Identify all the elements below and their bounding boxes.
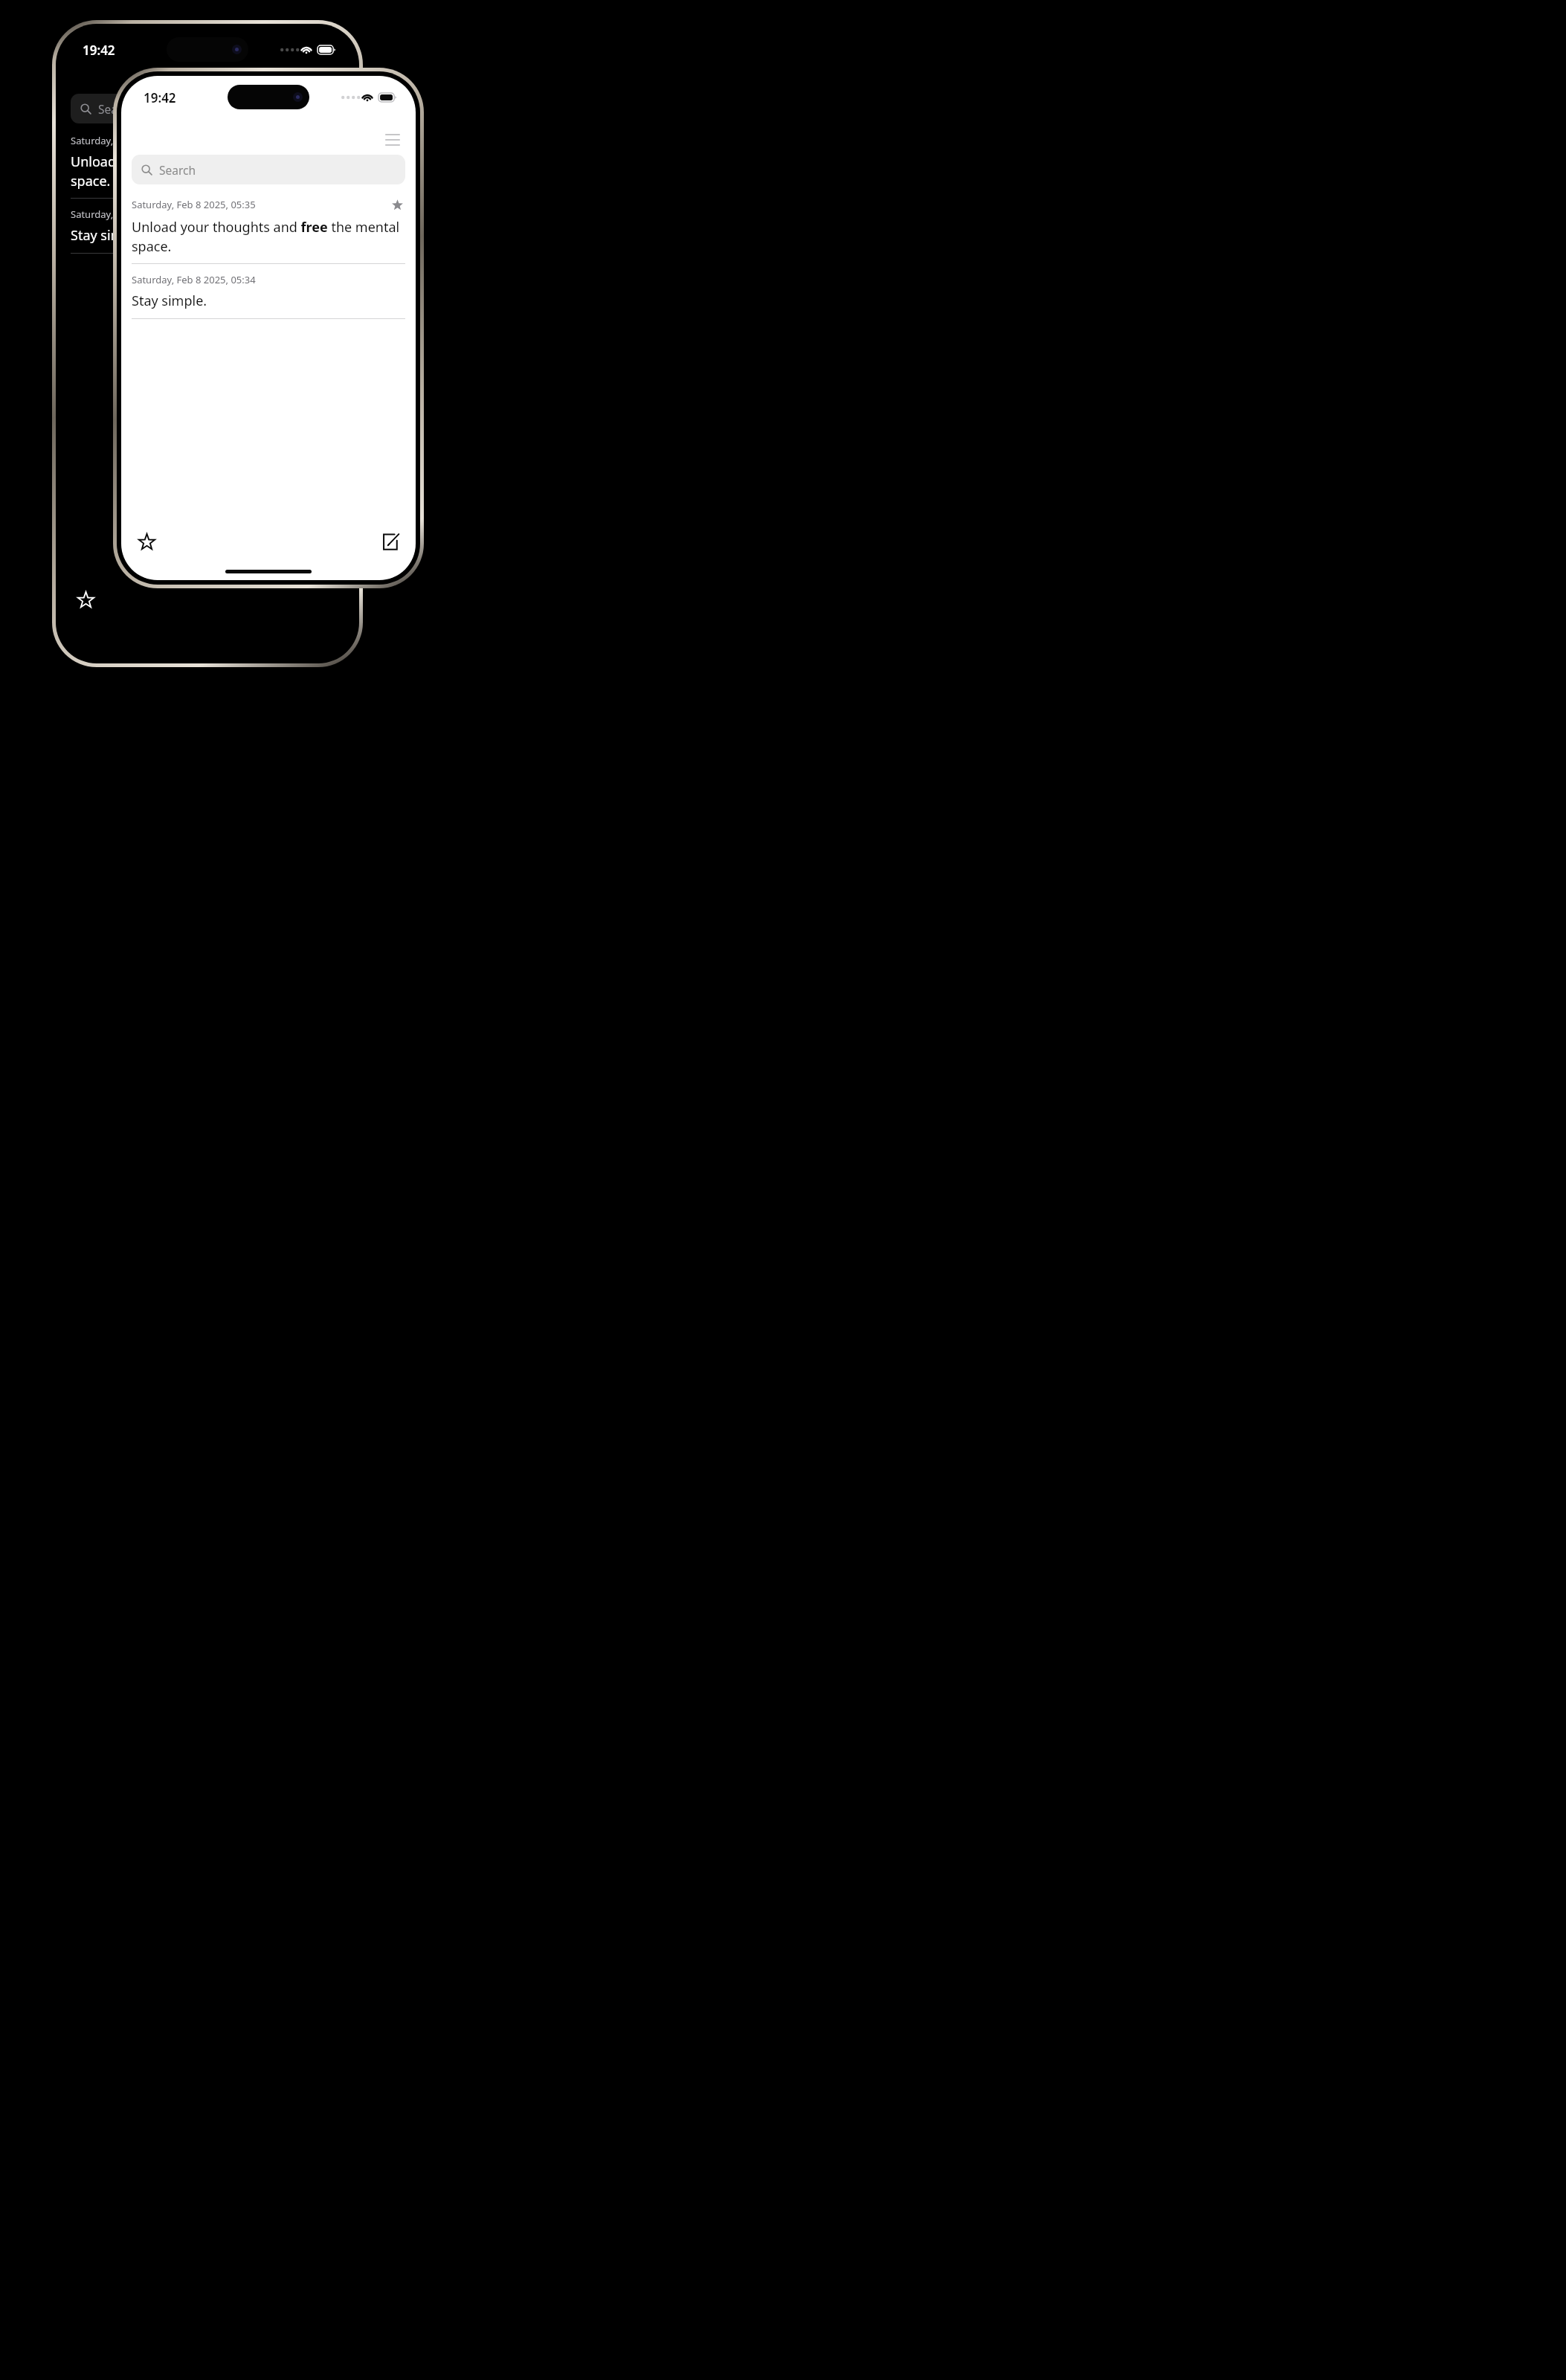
staticText: Unload your thoughts and free the mental… (132, 218, 405, 255)
button[interactable]: Starred (389, 196, 405, 213)
button[interactable]: Favorites (130, 525, 163, 558)
staticText: Stay simple. (71, 226, 146, 245)
staticText: Saturday, Feb 8 2025, 05:35 (71, 134, 344, 147)
button[interactable]: Saturday, Feb 8 2025, 05:34 (60, 208, 355, 263)
staticText: Saturday, Feb 8 2025, 05:34 (71, 208, 344, 221)
staticText: Unload your thoughts and free the mental… (71, 152, 344, 190)
staticText: Stay simple. (132, 292, 207, 310)
staticText: Saturday, Feb 8 2025, 05:34 (132, 273, 405, 286)
button[interactable]: Search (132, 155, 405, 184)
button[interactable]: Saturday, Feb 8 2025, 05:35 (121, 196, 416, 273)
button[interactable]: Favorites (69, 583, 102, 616)
button[interactable]: Menu (380, 126, 405, 152)
staticText: 19:42 (83, 42, 115, 59)
button[interactable]: Saturday, Feb 8 2025, 05:34 (121, 273, 416, 328)
staticText: Search (159, 162, 196, 178)
button[interactable]: Saturday, Feb 8 2025, 05:35 (60, 134, 355, 208)
staticText: Saturday, Feb 8 2025, 05:35 (132, 198, 389, 211)
staticText: 19:42 (144, 89, 176, 106)
button[interactable]: Search (71, 94, 344, 123)
button[interactable]: New note (374, 525, 407, 558)
staticText: Search (98, 101, 135, 117)
